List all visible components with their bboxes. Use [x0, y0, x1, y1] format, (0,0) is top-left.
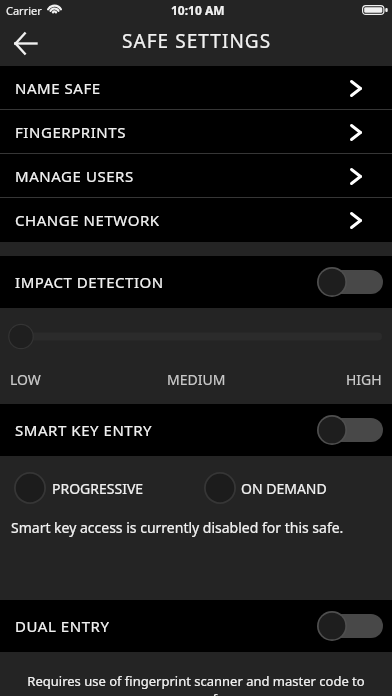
staticText: 10:10 AM	[171, 2, 225, 18]
button[interactable]: ON DEMAND	[204, 472, 327, 504]
button[interactable]: CHANGE NETWORK	[0, 198, 392, 242]
staticText: IMPACT DETECTION	[15, 272, 164, 292]
button[interactable]: PROGRESSIVE	[14, 472, 144, 504]
staticText: Requires use of fingerprint scanner and …	[16, 672, 376, 696]
staticText: NAME SAFE	[15, 78, 101, 98]
staticText: Smart key access is currently disabled f…	[11, 518, 344, 537]
button[interactable]: IMPACT DETECTION	[0, 256, 392, 308]
staticText: SAFE SETTINGS	[122, 28, 272, 54]
staticText: Carrier	[6, 3, 42, 18]
staticText: MANAGE USERS	[15, 166, 134, 186]
staticText: DUAL ENTRY	[15, 616, 110, 636]
staticText: PROGRESSIVE	[52, 479, 144, 498]
button[interactable]: DUAL ENTRY	[0, 600, 392, 652]
button[interactable]: MANAGE USERS	[0, 154, 392, 198]
staticText: HIGH	[346, 370, 382, 389]
staticText: CHANGE NETWORK	[15, 210, 160, 230]
button[interactable]: Back	[0, 20, 50, 66]
staticText: ON DEMAND	[241, 479, 327, 498]
button[interactable]: FINGERPRINTS	[0, 110, 392, 154]
staticText: FINGERPRINTS	[15, 122, 126, 142]
staticText: SMART KEY ENTRY	[15, 420, 153, 440]
staticText: MEDIUM	[167, 370, 226, 389]
staticText: LOW	[10, 370, 41, 389]
button[interactable]: SMART KEY ENTRY	[0, 404, 392, 456]
button[interactable]: NAME SAFE	[0, 66, 392, 110]
